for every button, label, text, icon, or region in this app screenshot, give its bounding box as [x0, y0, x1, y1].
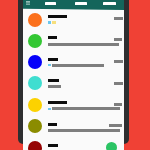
button[interactable] [23, 116, 124, 137]
button[interactable]: Tab [75, 2, 87, 5]
button[interactable]: Compose [106, 142, 117, 150]
button[interactable] [23, 31, 124, 52]
button[interactable]: Menu [26, 1, 30, 5]
button[interactable] [23, 10, 124, 31]
button[interactable] [23, 73, 124, 94]
button[interactable] [23, 95, 124, 116]
button[interactable] [23, 138, 124, 150]
button[interactable]: Tab [103, 2, 116, 5]
button[interactable]: Tab [45, 2, 56, 5]
button[interactable] [23, 52, 124, 73]
